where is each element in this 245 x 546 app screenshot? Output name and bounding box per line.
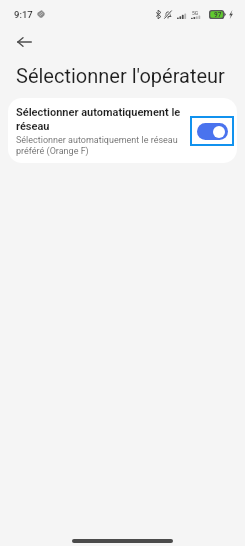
button[interactable]: Sélectionner automatiquement le réseau <box>191 117 233 145</box>
staticText: Sélectionner l'opérateur <box>16 64 225 87</box>
staticText: 5G <box>192 10 199 16</box>
staticText: Sélectionner automatiquement le réseau <box>16 106 184 133</box>
staticText: 97 <box>214 11 222 19</box>
button[interactable]: Back <box>10 28 38 56</box>
button[interactable]: Sélectionner automatiquement le réseau <box>8 98 237 163</box>
staticText: 9:17 <box>14 9 33 20</box>
staticText: Sélectionner automatiquement le réseau p… <box>16 135 184 157</box>
